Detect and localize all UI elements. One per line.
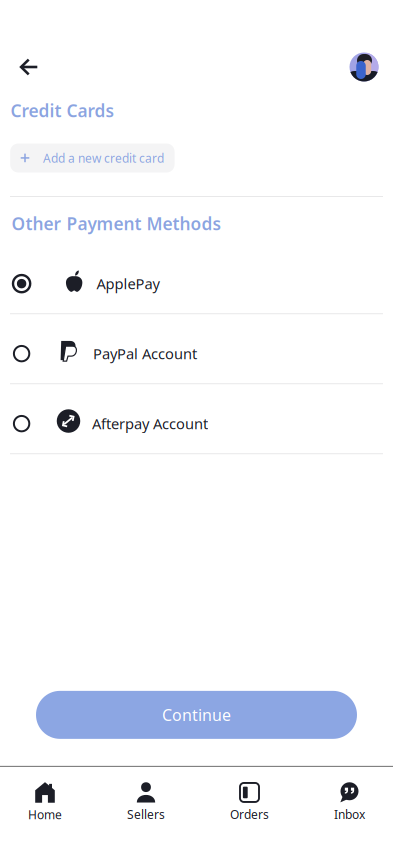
button[interactable]: Back <box>7 45 51 89</box>
button[interactable]: Orders <box>230 782 269 822</box>
staticText: Continue <box>162 704 231 725</box>
staticText: ApplePay <box>96 274 159 293</box>
button[interactable]: Afterpay Account <box>0 394 393 454</box>
button[interactable]: PayPal Account <box>0 324 393 384</box>
button[interactable]: Home <box>28 782 62 822</box>
staticText: Home <box>28 807 62 822</box>
button[interactable]: Inbox <box>334 782 365 822</box>
staticText: Sellers <box>127 806 165 822</box>
staticText: Afterpay Account <box>92 414 208 433</box>
button[interactable]: Add a new credit card <box>10 143 175 172</box>
staticText: Inbox <box>334 806 365 822</box>
staticText: Orders <box>230 806 269 822</box>
staticText: Add a new credit card <box>43 150 164 166</box>
button[interactable]: ApplePay <box>0 254 393 314</box>
button[interactable]: Profile <box>349 52 378 81</box>
button[interactable]: Continue <box>36 691 357 739</box>
staticText: PayPal Account <box>93 344 197 363</box>
button[interactable]: Sellers <box>127 782 165 822</box>
staticText: Credit Cards <box>11 99 115 122</box>
staticText: Other Payment Methods <box>11 212 221 235</box>
